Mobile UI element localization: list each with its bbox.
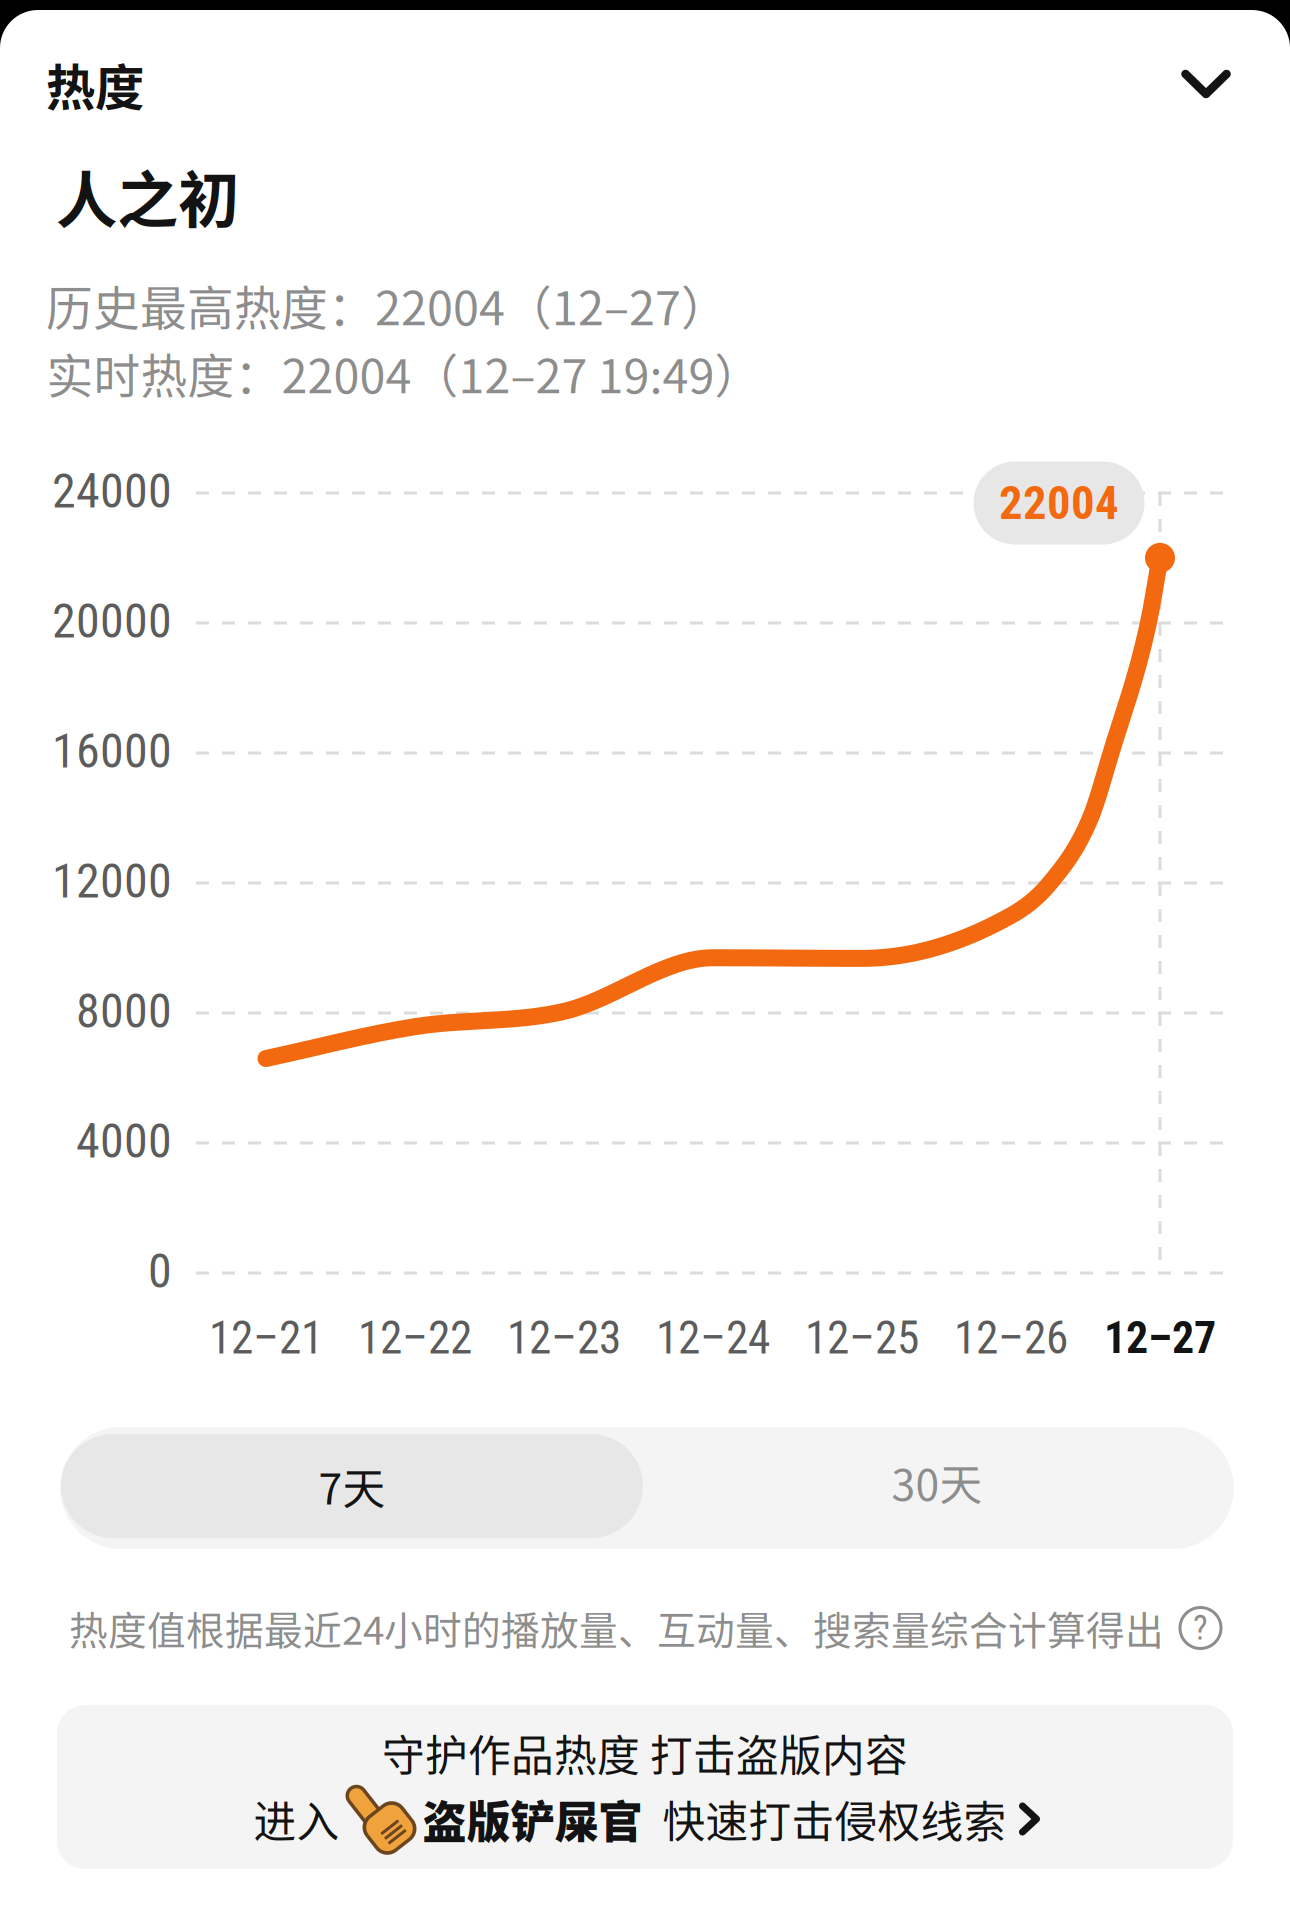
staticText: ?	[1193, 1608, 1208, 1648]
staticText: 热度值根据最近24小时的播放量、互动量、搜索量综合计算得出	[69, 1600, 1164, 1656]
staticText: 12‒27	[1104, 1312, 1216, 1364]
staticText: 热度	[46, 48, 144, 120]
staticText: 快速打击侵权线索	[642, 1788, 1006, 1850]
staticText: 24000	[52, 463, 172, 519]
staticText: 12‒21	[209, 1311, 323, 1364]
button[interactable]: 收起	[1153, 42, 1258, 126]
staticText: 30天	[891, 1451, 982, 1513]
staticText: 12‒23	[507, 1311, 621, 1364]
staticText: 7天	[318, 1455, 385, 1517]
staticText: 盗版铲屎官	[422, 1787, 642, 1851]
button[interactable]: 守护作品热度 打击盗版内容	[57, 1705, 1233, 1869]
staticText: 守护作品热度 打击盗版内容	[382, 1722, 908, 1784]
button[interactable]: 7天	[61, 1434, 643, 1538]
staticText: 12000	[52, 853, 172, 909]
staticText: 实时热度：22004（12‒27 19:49）	[46, 339, 761, 407]
staticText: 12‒25	[805, 1311, 919, 1364]
staticText: 20000	[52, 593, 172, 649]
staticText: 进入	[253, 1788, 339, 1850]
staticText: 历史最高热度：22004（12‒27）	[46, 271, 728, 339]
staticText: 12‒24	[656, 1311, 770, 1364]
staticText: 12‒22	[358, 1311, 472, 1364]
staticText: 22004	[999, 476, 1119, 530]
staticText: 4000	[76, 1113, 172, 1169]
button[interactable]: 30天	[646, 1430, 1228, 1534]
staticText: 12‒26	[954, 1311, 1068, 1364]
staticText: 0	[148, 1243, 172, 1299]
staticText: 8000	[76, 983, 172, 1039]
staticText: 人之初	[56, 152, 239, 240]
staticText: 16000	[52, 723, 172, 779]
